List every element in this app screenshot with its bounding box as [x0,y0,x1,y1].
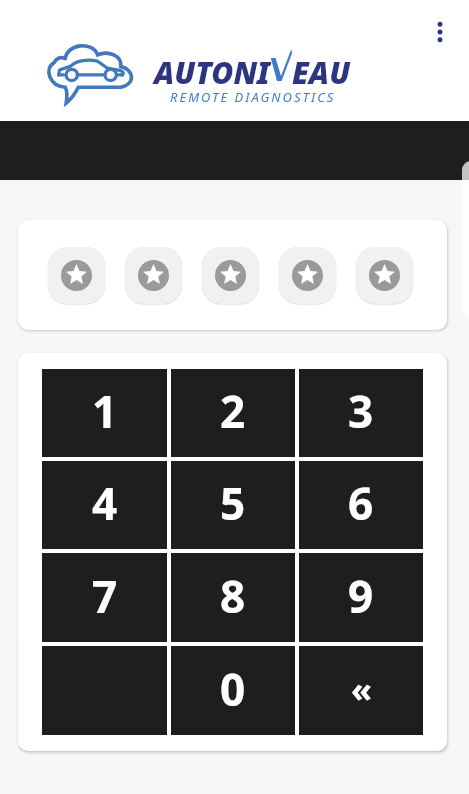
staticText: 3 [348,381,374,441]
button[interactable]: 3 [299,369,423,457]
button[interactable]: 9 [299,553,423,642]
staticText: EAU [292,52,351,93]
button[interactable]: 6 [299,461,423,549]
button[interactable]: 0 [171,646,295,735]
staticText: 1 [92,381,118,441]
staticText: 9 [348,566,374,626]
button[interactable]: 8 [171,553,295,642]
staticText: 7 [92,566,118,626]
staticText: « [351,666,372,712]
staticText: 4 [92,473,118,533]
staticText: REMOTE DIAGNOSTICS [170,88,336,106]
button[interactable]: Next panel [462,161,469,318]
button[interactable]: 7 [42,553,167,642]
button[interactable]: 2 [171,369,295,457]
button[interactable]: Favourite [48,247,105,304]
staticText: 6 [348,473,374,533]
button[interactable]: Favourite [356,247,413,304]
button[interactable]: 1 [42,369,167,457]
staticText: 5 [220,473,246,533]
button[interactable]: 5 [171,461,295,549]
button[interactable]: Favourite [125,247,182,304]
staticText: AUTONI [154,52,270,93]
button[interactable]: 4 [42,461,167,549]
staticText: 2 [220,381,246,441]
button[interactable]: Favourite [279,247,336,304]
button[interactable]: Favourite [202,247,259,304]
staticText: 8 [220,566,246,626]
staticText: 0 [220,659,246,719]
button[interactable]: More options [424,16,456,48]
button[interactable]: « [299,646,423,735]
